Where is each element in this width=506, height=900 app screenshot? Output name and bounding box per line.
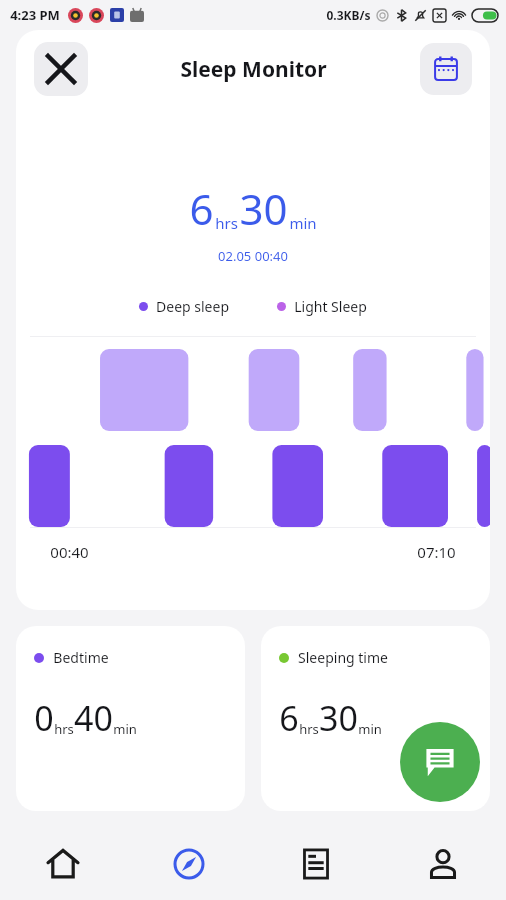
staticText: Sleeping time — [298, 648, 388, 667]
staticText: min — [289, 213, 317, 233]
button[interactable]: Bedtime — [16, 626, 245, 811]
staticText: Deep sleep — [156, 297, 229, 316]
staticText: 07:10 — [417, 542, 456, 562]
staticText: hrs — [215, 213, 238, 233]
button[interactable]: Calendar — [420, 43, 472, 95]
button[interactable]: Close — [34, 42, 88, 96]
staticText: Sleep Monitor — [180, 55, 327, 84]
staticText: 02.05 00:40 — [218, 247, 288, 265]
button[interactable]: Records — [252, 828, 379, 900]
staticText: 00:40 — [50, 542, 89, 562]
staticText: min — [113, 720, 137, 738]
staticText: 4:23 PM — [10, 6, 60, 24]
staticText: 0.3KB/s — [326, 7, 371, 23]
button[interactable]: Home — [0, 828, 126, 900]
button[interactable]: Profile — [379, 828, 506, 900]
button[interactable]: Messages — [400, 722, 480, 802]
button[interactable]: Explore — [126, 828, 252, 900]
button[interactable]: Sleeping time — [261, 626, 490, 811]
staticText: 30 — [319, 695, 358, 741]
staticText: Bedtime — [53, 648, 109, 667]
staticText: 6 — [189, 180, 214, 237]
staticText: 30 — [239, 180, 288, 237]
staticText: 40 — [74, 695, 113, 741]
staticText: Light Sleep — [294, 297, 367, 316]
staticText: 6 — [279, 695, 299, 741]
staticText: 0 — [34, 695, 54, 741]
staticText: hrs — [299, 720, 319, 738]
staticText: min — [358, 720, 382, 738]
staticText: hrs — [54, 720, 74, 738]
